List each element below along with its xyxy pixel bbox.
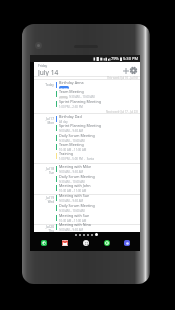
button[interactable]: Meeting with Sue [56,193,140,203]
staticText: 10:30 AM – 11:00 AM [59,148,87,152]
button[interactable]: All apps [82,239,90,247]
staticText: 1:00 PM – 5:00 PM - Santa [59,157,95,161]
button[interactable]: Team Meeting [56,89,140,99]
staticText: Daily Scrum Meeting [59,133,95,138]
button[interactable]: Chrome [123,239,131,247]
staticText: Training [59,151,74,156]
staticText: This week (Jul 10 - Jul 16) [107,76,138,80]
staticText: 9:00 AM – 9:30 AM [59,129,84,133]
staticText: Birthday Anna [59,80,84,85]
staticText: 9:00 AM – 9:30 AM [59,199,84,203]
button[interactable]: Sprint Planning Meeting [56,123,140,133]
staticText: Today [45,83,54,87]
staticText: NOW [60,96,67,99]
staticText: All day [60,86,68,89]
staticText: 10:30 AM – 11:00 AM [59,189,87,193]
staticText: Meeting with Sue [59,193,90,198]
staticText: 9:30 AM – 10:00 AM [59,209,85,213]
button[interactable]: Meeting with John [56,183,140,193]
button[interactable]: Gmail [61,239,69,247]
button[interactable]: Phone [40,239,48,247]
staticText: Jul 19 [45,196,54,200]
staticText: July 14 [38,68,59,77]
button[interactable]: Training [56,151,140,161]
button[interactable]: Settings [128,65,139,76]
staticText: 9:30 AM – 10:00 AM [69,95,95,99]
staticText: Daily Scrum Meeting [59,174,95,179]
staticText: 9:00 AM – 9:30 AM [59,170,84,174]
staticText: Meeting with Nina [59,222,91,227]
staticText: Jul 18 [45,167,54,171]
staticText: Sprint Planning Meeting [59,99,101,104]
button[interactable]: Team Meeting [56,142,140,152]
button[interactable]: WhatsApp [103,239,111,247]
staticText: Jul 17 [45,117,54,121]
staticText: 1:00 PM – 2:30 PM [59,105,83,109]
staticText: Jul 20 [45,225,54,229]
staticText: Birthday Dad [59,114,82,119]
staticText: Tue [48,171,54,175]
staticText: Mon [47,121,54,125]
staticText: Daily Scrum Meeting [59,203,95,208]
staticText: Team Meeting [59,89,84,94]
button[interactable]: Add event [120,65,131,76]
button[interactable]: Birthday Anna [56,80,140,90]
staticText: Sprint Planning Meeting [59,123,101,128]
button[interactable]: Daily Scrum Meeting [56,133,140,143]
button[interactable]: Meeting with Mike [56,164,140,174]
button[interactable]: Meeting with Nina [56,222,140,232]
staticText: Team Meeting [59,142,84,147]
staticText: All day [59,120,68,124]
staticText: 79% [111,56,119,61]
button[interactable]: Meeting with Sue [56,213,140,223]
staticText: 9:30 AM – 10:00 AM [59,139,85,143]
staticText: Friday [38,64,48,68]
button[interactable]: Birthday Dad [56,114,140,124]
button[interactable]: Daily Scrum Meeting [56,174,140,184]
staticText: 10:30 AM – 11:00 AM [59,219,87,223]
staticText: 9:30 AM – 10:00 AM [59,180,85,184]
staticText: Thu [48,229,54,233]
staticText: 5:30 PM [123,56,139,61]
staticText: Meeting with John [59,183,91,188]
button[interactable]: Daily Scrum Meeting [56,203,140,213]
button[interactable]: Sprint Planning Meeting [56,99,140,109]
staticText: Next week (Jul 17 - Jul 23) [106,110,138,114]
staticText: Meeting with Mike [59,164,92,169]
staticText: Wed [47,200,54,204]
staticText: 9:00 AM – 9:30 AM [59,228,84,232]
staticText: Meeting with Sue [59,213,90,218]
